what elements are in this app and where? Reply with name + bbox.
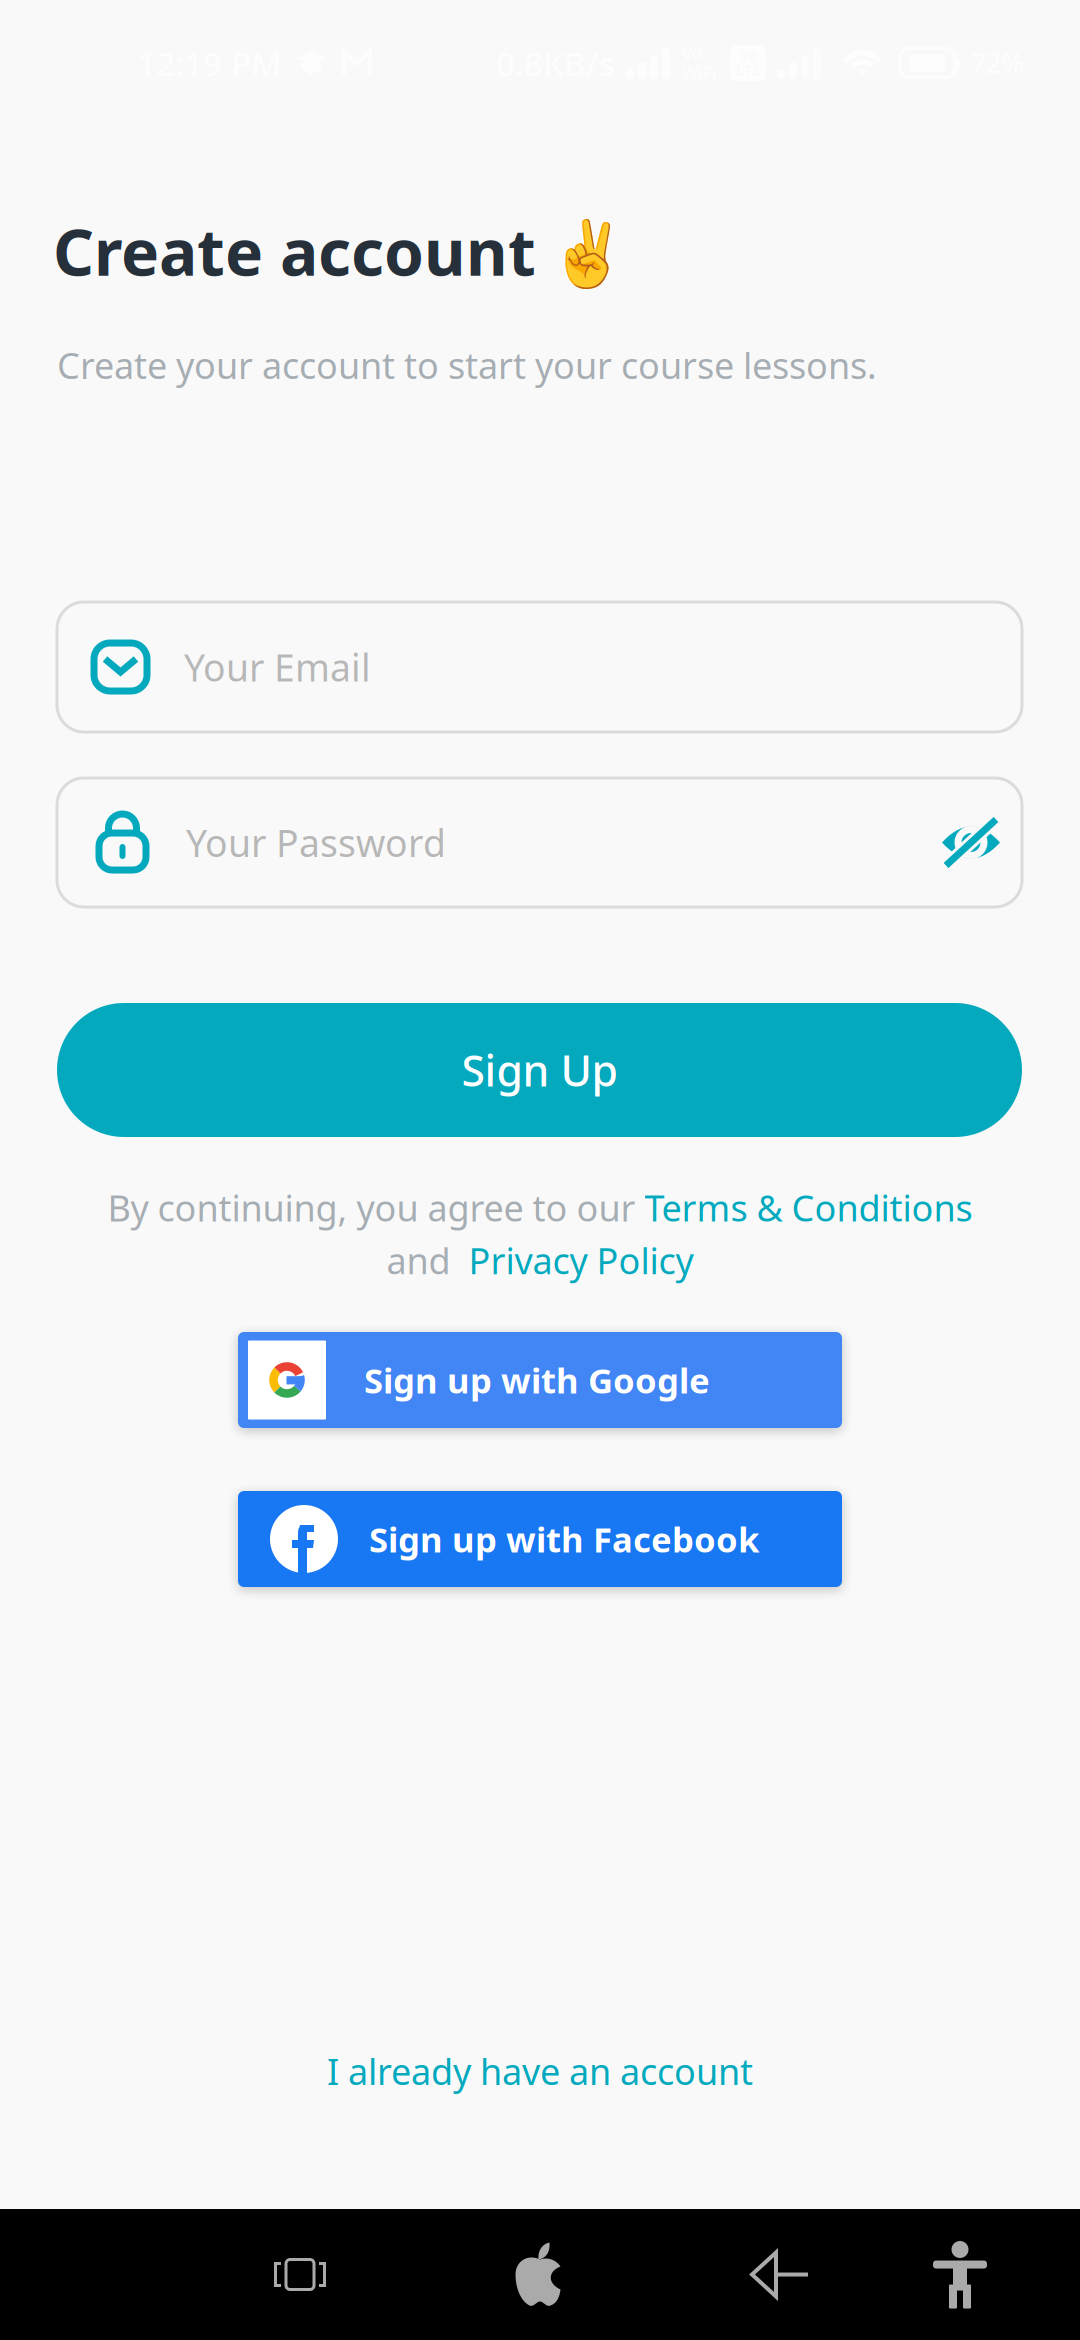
staticText: Create your account to start your course…: [57, 341, 877, 389]
button[interactable]: Sign Up: [57, 1003, 1022, 1137]
staticText: By continuing, you agree to our: [107, 1184, 644, 1231]
button[interactable]: Home: [460, 2209, 620, 2340]
staticText: and: [386, 1236, 468, 1284]
button[interactable]: Recent apps: [220, 2209, 380, 2340]
staticText: Terms & Conditions: [644, 1184, 972, 1231]
staticText: Your Password: [186, 818, 446, 867]
staticText: Sign up with Google: [364, 1357, 710, 1403]
button[interactable]: Show password: [941, 816, 1001, 868]
button[interactable]: I already have an account: [0, 2038, 1080, 2104]
staticText: ✌️: [548, 217, 628, 290]
staticText: Create account: [53, 208, 536, 293]
button[interactable]: Back: [700, 2209, 860, 2340]
button[interactable]: Sign up with Google: [238, 1332, 842, 1428]
staticText: Sign Up: [461, 1042, 617, 1098]
staticText: I already have an account: [327, 2047, 753, 2095]
button[interactable]: Sign up with Facebook: [238, 1491, 842, 1587]
button[interactable]: Accessibility: [880, 2209, 1040, 2340]
staticText: Privacy Policy: [468, 1236, 693, 1284]
staticText: Your Email: [184, 642, 371, 692]
staticText: Sign up with Facebook: [369, 1516, 759, 1562]
